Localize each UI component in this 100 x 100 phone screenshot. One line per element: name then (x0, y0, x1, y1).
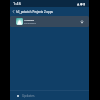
button[interactable]: Whalebird (10, 16, 89, 27)
button[interactable]: Install (79, 19, 85, 25)
button[interactable]: Back (11, 9, 16, 14)
staticText: ▲ ● ▮ (77, 2, 86, 6)
staticText: Updates (22, 94, 35, 98)
staticText: h3_potato's Projects 2 apps (16, 10, 53, 14)
staticText: org.whalebird (24, 22, 36, 24)
staticText: 1:46 (13, 1, 21, 6)
button[interactable]: Updates (15, 92, 35, 100)
staticText: Whalebird (24, 19, 35, 22)
button[interactable]: Back (10, 7, 89, 16)
